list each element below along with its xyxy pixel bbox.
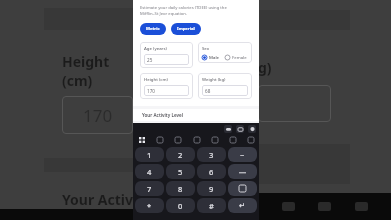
staticText: Your Activ bbox=[62, 190, 133, 209]
button[interactable]: 4 bbox=[135, 164, 164, 179]
button[interactable]: 3 bbox=[197, 147, 226, 162]
button[interactable]: 2 bbox=[166, 147, 195, 162]
other: radio bbox=[202, 55, 207, 60]
staticText: 170 bbox=[147, 88, 155, 94]
staticText: Male bbox=[209, 54, 220, 60]
button[interactable]: ⌫ bbox=[228, 181, 257, 196]
button[interactable]: Settings bbox=[210, 135, 219, 144]
button[interactable]: 7 bbox=[135, 181, 164, 196]
staticText: − bbox=[240, 150, 245, 160]
button[interactable]: Location bbox=[248, 125, 256, 133]
staticText: 4 bbox=[147, 167, 152, 177]
button[interactable]: Sex bbox=[198, 42, 252, 63]
staticText: 68 bbox=[205, 88, 211, 94]
button[interactable]: 6 bbox=[197, 164, 226, 179]
staticText: Age (years) bbox=[144, 45, 167, 51]
button[interactable]: Clipboard bbox=[155, 135, 164, 144]
staticText: 5 bbox=[178, 167, 183, 177]
button[interactable]: Weight (kg) bbox=[198, 73, 252, 99]
staticText: Female bbox=[232, 54, 247, 60]
staticText: Estimate your daily calories (TDEE) usin… bbox=[140, 5, 227, 17]
button[interactable]: ↵ bbox=[228, 198, 257, 213]
staticText: Height (cm) bbox=[144, 76, 168, 82]
button[interactable]: Sticker bbox=[192, 135, 201, 144]
button[interactable]: 68 bbox=[202, 85, 248, 96]
button[interactable]: 25 bbox=[144, 54, 189, 65]
button[interactable]: 1 bbox=[135, 147, 164, 162]
other: radio bbox=[225, 55, 230, 60]
staticText: 2 bbox=[178, 150, 183, 160]
staticText: Weight (kg) bbox=[202, 76, 226, 82]
button[interactable]: 8 bbox=[166, 181, 195, 196]
button[interactable]: Apps bbox=[137, 135, 146, 144]
button[interactable]: Keyboard bbox=[236, 125, 244, 133]
staticText: 1 bbox=[147, 150, 152, 160]
staticText: ↵ bbox=[239, 201, 246, 210]
button[interactable]: Voice typing bbox=[224, 125, 232, 133]
button[interactable]: − bbox=[228, 147, 257, 162]
button[interactable]: Imperial bbox=[171, 23, 201, 35]
button[interactable]: # bbox=[197, 198, 226, 213]
staticText: Imperial bbox=[177, 26, 195, 32]
staticText: 170 bbox=[83, 104, 113, 127]
button[interactable]: 9 bbox=[197, 181, 226, 196]
staticText: 25 bbox=[147, 57, 153, 63]
button[interactable]: Age (years) bbox=[140, 42, 193, 68]
button[interactable]: Microphone bbox=[246, 135, 255, 144]
button[interactable]: * bbox=[135, 198, 164, 213]
staticText: Height (cm) bbox=[62, 52, 133, 90]
staticText: g) bbox=[258, 58, 272, 77]
staticText: Your Activity Level bbox=[142, 112, 184, 118]
staticText: Sex bbox=[202, 45, 210, 51]
button[interactable]: 170 bbox=[144, 85, 189, 96]
button[interactable]: Height (cm) bbox=[140, 73, 193, 99]
button[interactable]: Translate bbox=[173, 135, 182, 144]
button[interactable]: ␣ bbox=[228, 164, 257, 179]
staticText: # bbox=[209, 201, 214, 211]
staticText: 7 bbox=[147, 184, 152, 194]
staticText: 0 bbox=[178, 201, 183, 211]
staticText: Metric bbox=[146, 26, 160, 32]
button[interactable]: 0 bbox=[166, 198, 195, 213]
button[interactable]: Emoji bbox=[228, 135, 237, 144]
staticText: 8 bbox=[178, 184, 183, 194]
button[interactable]: Metric bbox=[140, 23, 166, 35]
staticText: 6 bbox=[209, 167, 214, 177]
staticText: 9 bbox=[209, 184, 214, 194]
button[interactable]: 5 bbox=[166, 164, 195, 179]
staticText: * bbox=[147, 201, 152, 211]
staticText: 3 bbox=[209, 150, 214, 160]
